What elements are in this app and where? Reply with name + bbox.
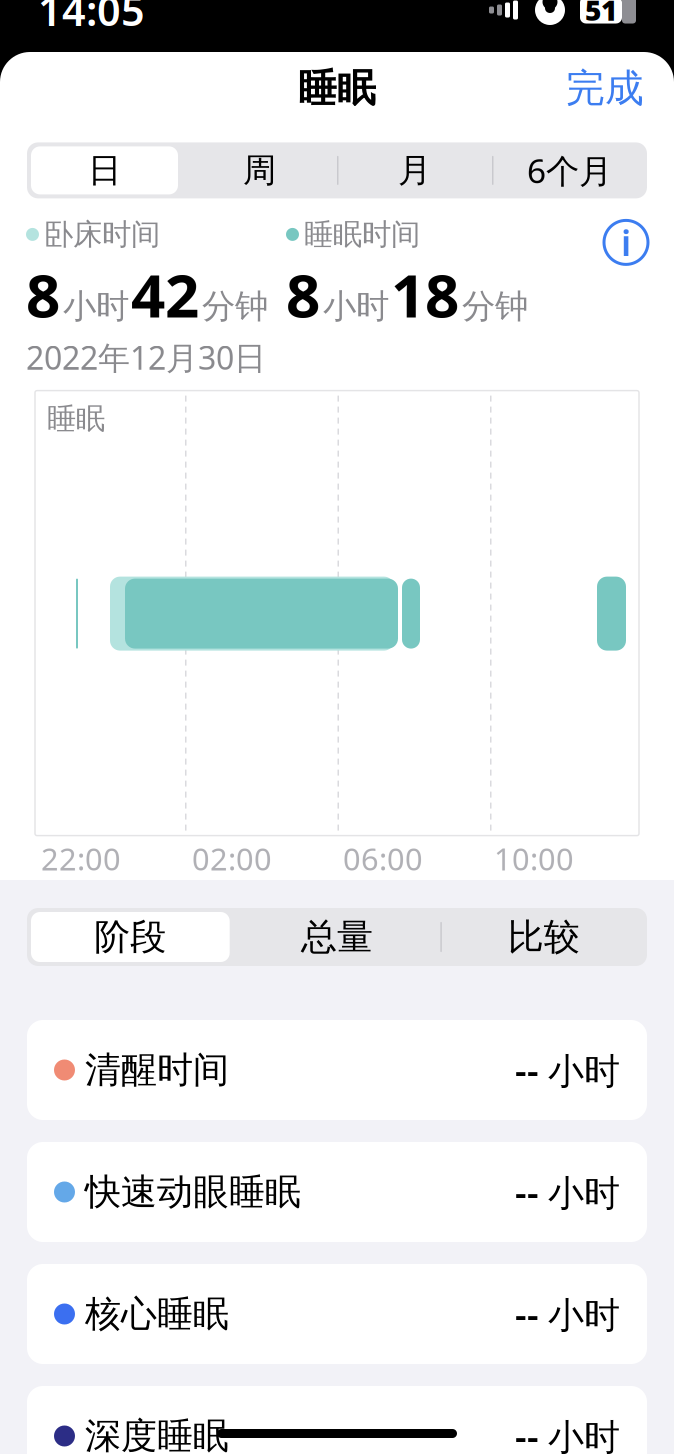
staticText: 51	[585, 0, 617, 29]
staticText: 10:00	[494, 838, 574, 879]
button[interactable]: 日	[27, 142, 182, 198]
staticText: 6个月	[527, 148, 612, 193]
button[interactable]: 深度睡眠	[27, 1386, 647, 1454]
button[interactable]: 月	[337, 142, 492, 198]
staticText: 小时	[323, 286, 389, 327]
staticText: 快速动眼睡眠	[85, 1170, 301, 1214]
staticText: 日	[88, 150, 121, 191]
staticText: -- 小时	[515, 1046, 620, 1094]
staticText: -- 小时	[515, 1290, 620, 1338]
staticText: 阶段	[94, 915, 166, 959]
staticText: 14:05	[38, 0, 145, 37]
button[interactable]: 快速动眼睡眠	[27, 1142, 647, 1242]
staticText: 核心睡眠	[85, 1292, 229, 1336]
staticText: 8	[26, 254, 60, 334]
staticText: 完成	[566, 65, 644, 112]
button[interactable]: 比较	[440, 908, 647, 966]
staticText: i	[621, 218, 631, 266]
staticText: 总量	[301, 915, 373, 959]
staticText: 比较	[508, 915, 580, 959]
staticText: 小时	[63, 286, 129, 327]
staticText: -- 小时	[515, 1168, 620, 1216]
staticText: 卧床时间	[44, 216, 160, 252]
button[interactable]: 周	[182, 142, 337, 198]
staticText: 深度睡眠	[85, 1414, 229, 1454]
staticText: 06:00	[343, 838, 423, 879]
button[interactable]: 关于睡眠	[600, 216, 652, 268]
button[interactable]: 阶段	[27, 908, 234, 966]
staticText: 睡眠	[47, 401, 105, 437]
staticText: 2022年12月30日	[26, 336, 266, 379]
staticText: 分钟	[202, 286, 268, 327]
button[interactable]: 完成	[556, 57, 654, 120]
button[interactable]: 总量	[234, 908, 440, 966]
staticText: 清醒时间	[85, 1048, 229, 1092]
staticText: 分钟	[462, 286, 528, 327]
staticText: 月	[398, 150, 431, 191]
button[interactable]: 清醒时间	[27, 1020, 647, 1120]
staticText: 8	[286, 254, 320, 334]
staticText: 睡眠	[298, 65, 376, 112]
button[interactable]: 6个月	[492, 142, 647, 198]
staticText: 18	[391, 254, 459, 334]
button[interactable]: 核心睡眠	[27, 1264, 647, 1364]
staticText: 02:00	[192, 838, 272, 879]
staticText: 42	[131, 254, 199, 334]
staticText: 周	[243, 150, 276, 191]
staticText: 22:00	[41, 838, 121, 879]
staticText: -- 小时	[515, 1412, 620, 1454]
staticText: 睡眠时间	[304, 216, 420, 252]
